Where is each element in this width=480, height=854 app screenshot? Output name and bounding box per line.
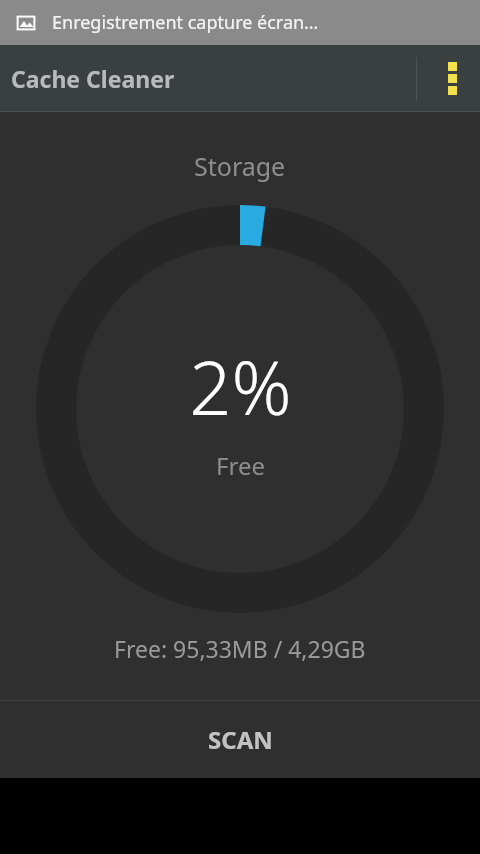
staticText: Free: 95,33MB / 4,29GB <box>114 633 366 664</box>
button[interactable]: More options <box>424 45 480 112</box>
staticText: Cache Cleaner <box>11 63 175 94</box>
staticText: Storage <box>194 149 286 183</box>
staticText: Enregistrement capture écran… <box>52 10 319 35</box>
button[interactable]: SCAN <box>0 701 480 778</box>
staticText: SCAN <box>208 723 273 756</box>
staticText: 2% <box>189 336 292 437</box>
staticText: Free <box>216 449 265 482</box>
